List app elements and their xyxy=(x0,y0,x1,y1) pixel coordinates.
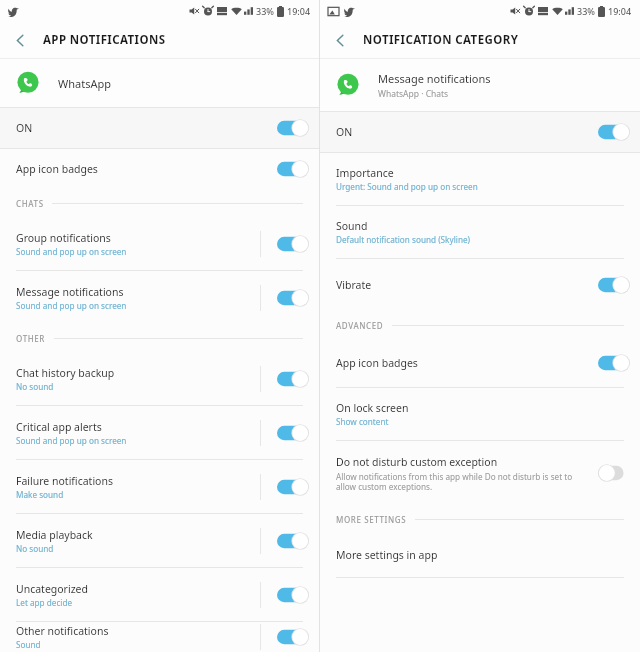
staticText: Default notification sound (Skyline) xyxy=(336,234,471,245)
staticText: Uncategorized xyxy=(16,582,88,596)
button[interactable]: Importance xyxy=(320,153,640,205)
button[interactable]: App icon badges xyxy=(0,149,319,189)
staticText: ON xyxy=(336,125,353,139)
staticText: Urgent: Sound and pop up on screen xyxy=(336,181,478,192)
staticText: App icon badges xyxy=(16,162,98,176)
staticText: Make sound xyxy=(16,489,64,500)
staticText: App icon badges xyxy=(336,356,418,370)
staticText: ADVANCED xyxy=(336,320,384,331)
staticText: 19:04 xyxy=(287,5,311,17)
staticText: 33% xyxy=(256,5,274,17)
staticText: Group notifications xyxy=(16,231,111,245)
staticText: Message notifications xyxy=(16,285,124,299)
button[interactable]: Back xyxy=(6,26,34,54)
button[interactable]: ON xyxy=(320,112,640,152)
button[interactable]: More settings in app xyxy=(320,533,640,577)
button[interactable]: Vibrate xyxy=(320,259,640,311)
staticText: Sound xyxy=(336,219,368,233)
staticText: More settings in app xyxy=(336,548,438,562)
button[interactable]: Other notifications xyxy=(0,622,319,652)
staticText: Let app decide xyxy=(16,597,73,608)
staticText: 33% xyxy=(577,5,595,17)
staticText: Do not disturb custom exception xyxy=(336,455,498,469)
staticText: Other notifications xyxy=(16,624,109,638)
staticText: Sound and pop up on screen xyxy=(16,435,127,446)
button[interactable]: Media playback xyxy=(0,514,319,567)
button[interactable]: On lock screen xyxy=(320,388,640,440)
staticText: Critical app alerts xyxy=(16,420,102,434)
staticText: No sound xyxy=(16,381,54,392)
staticText: ON xyxy=(16,121,33,135)
button[interactable]: Back xyxy=(326,26,354,54)
staticText: Media playback xyxy=(16,528,93,542)
button[interactable]: Message notifications xyxy=(320,59,640,111)
staticText: Message notifications xyxy=(378,71,491,86)
staticText: WhatsApp xyxy=(58,76,111,91)
staticText: Failure notifications xyxy=(16,474,113,488)
staticText: APP NOTIFICATIONS xyxy=(43,32,166,48)
staticText: Sound and pop up on screen xyxy=(16,246,127,257)
staticText: Allow notifications from this app while … xyxy=(336,471,590,492)
staticText: Importance xyxy=(336,166,394,180)
button[interactable]: Uncategorized xyxy=(0,568,319,621)
button[interactable]: WhatsApp xyxy=(0,59,319,107)
button[interactable]: Do not disturb custom exception xyxy=(320,441,640,505)
staticText: Vibrate xyxy=(336,278,372,292)
button[interactable]: Critical app alerts xyxy=(0,406,319,459)
staticText: NOTIFICATION CATEGORY xyxy=(363,32,519,48)
button[interactable]: Message notifications xyxy=(0,271,319,324)
staticText: WhatsApp · Chats xyxy=(378,88,449,100)
staticText: Show content xyxy=(336,416,389,427)
staticText: No sound xyxy=(16,543,54,554)
staticText: Sound xyxy=(16,639,41,650)
staticText: Chat history backup xyxy=(16,366,115,380)
button[interactable]: ON xyxy=(0,108,319,148)
button[interactable]: App icon badges xyxy=(320,339,640,387)
staticText: CHATS xyxy=(16,198,44,209)
staticText: Sound and pop up on screen xyxy=(16,300,127,311)
button[interactable]: Sound xyxy=(320,206,640,258)
button[interactable]: Failure notifications xyxy=(0,460,319,513)
button[interactable]: Group notifications xyxy=(0,217,319,270)
button[interactable]: Chat history backup xyxy=(0,352,319,405)
staticText: OTHER xyxy=(16,333,46,344)
staticText: MORE SETTINGS xyxy=(336,514,407,525)
staticText: 19:04 xyxy=(608,5,632,17)
staticText: On lock screen xyxy=(336,401,409,415)
